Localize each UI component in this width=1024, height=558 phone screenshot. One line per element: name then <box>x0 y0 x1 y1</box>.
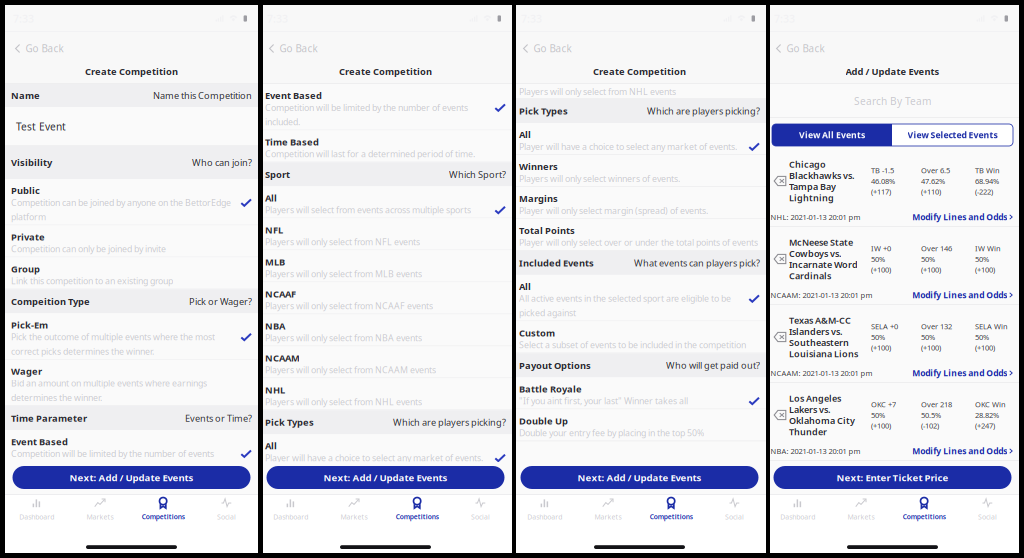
staticText: Sport <box>265 168 290 181</box>
button[interactable]: Next: Add / Update Events <box>266 466 504 489</box>
button[interactable]: Markets <box>829 497 892 523</box>
staticText: Double your entry fee by placing in the … <box>519 427 704 439</box>
button[interactable]: Social <box>703 497 766 523</box>
button[interactable]: Dashboard <box>259 497 322 523</box>
button[interactable]: NBA <box>259 314 512 346</box>
staticText: 50% <box>975 332 989 342</box>
button[interactable]: Modify Lines and Odds <box>912 445 1013 457</box>
staticText: Bid an amount on multiple events where e… <box>11 377 207 404</box>
button[interactable]: Markets <box>576 497 639 523</box>
button[interactable]: Wager <box>5 360 258 406</box>
button[interactable]: Markets <box>322 497 385 523</box>
button[interactable]: Go Back <box>766 32 1019 59</box>
button[interactable]: Dashboard <box>766 497 829 523</box>
staticText: Event Based <box>265 89 322 102</box>
staticText: (+100) <box>871 420 891 431</box>
button[interactable]: Competitions <box>639 497 703 523</box>
button[interactable]: Remove event <box>773 176 786 186</box>
staticText: SELA Win <box>975 321 1008 331</box>
staticText: Go Back <box>280 42 318 55</box>
staticText: 50% <box>921 332 935 342</box>
button[interactable]: Next: Enter Ticket Price <box>773 466 1011 489</box>
staticText: Pick or Wager? <box>189 295 252 308</box>
button[interactable]: Modify Lines and Odds <box>912 211 1013 223</box>
button[interactable]: Double Up <box>513 409 766 441</box>
button[interactable]: Pick-Em <box>5 313 258 360</box>
button[interactable]: Private <box>5 225 258 257</box>
button[interactable]: Social <box>956 497 1019 523</box>
staticText: Custom <box>519 326 555 339</box>
button[interactable]: MLB <box>259 250 512 282</box>
staticText: (+110) <box>921 186 941 197</box>
staticText: Private <box>11 230 45 243</box>
button[interactable]: Competitions <box>892 497 956 523</box>
staticText: Competitions <box>650 512 693 521</box>
button[interactable]: Margins <box>513 187 766 219</box>
button[interactable]: All <box>259 186 512 218</box>
button[interactable]: Event Based <box>5 430 258 476</box>
staticText: Players will only select from NHL events <box>519 85 676 97</box>
button[interactable]: Event Based <box>259 84 512 130</box>
staticText: Which are players picking? <box>393 416 506 428</box>
button[interactable]: Modify Lines and Odds <box>912 289 1013 301</box>
button[interactable]: Group <box>5 257 258 289</box>
button[interactable]: Modify Lines and Odds <box>912 367 1013 379</box>
button[interactable]: Remove event <box>773 254 786 264</box>
button[interactable]: All <box>513 123 766 155</box>
staticText: NCAAF <box>265 287 296 300</box>
button[interactable]: Next: Add / Update Events <box>12 466 250 489</box>
button[interactable]: Markets <box>68 497 131 523</box>
button[interactable]: Dashboard <box>513 497 576 523</box>
button[interactable]: View All Events <box>772 124 892 146</box>
button[interactable]: Dashboard <box>5 497 68 523</box>
staticText: All <box>519 128 531 141</box>
staticText: (+100) <box>975 342 995 353</box>
button[interactable]: Battle Royale <box>513 377 766 409</box>
button[interactable]: Remove event <box>773 332 786 342</box>
staticText: Payout Options <box>519 359 591 372</box>
staticText: Public <box>11 184 40 197</box>
staticText: View All Events <box>799 129 865 141</box>
staticText: 50% <box>871 254 885 264</box>
staticText: Select a subset of events to be included… <box>519 339 746 351</box>
staticText: All active events in the selected sport … <box>519 292 731 319</box>
button[interactable]: Social <box>449 497 512 523</box>
button[interactable]: NHL <box>259 378 512 410</box>
button[interactable]: NCAAF <box>259 282 512 314</box>
button[interactable]: Next: Add / Update Events <box>520 466 758 489</box>
staticText: Go Back <box>534 42 572 55</box>
button[interactable]: Go Back <box>259 32 512 59</box>
staticText: Dashboard <box>19 512 54 522</box>
button[interactable]: View Selected Events <box>892 124 1013 146</box>
button[interactable]: All <box>259 434 512 466</box>
button[interactable]: Time Based <box>259 130 512 162</box>
button[interactable]: Go Back <box>513 32 766 59</box>
button[interactable]: NCAAM <box>259 346 512 378</box>
staticText: 50% <box>871 410 885 420</box>
button[interactable]: Competitions <box>385 497 449 523</box>
staticText: (+247) <box>975 420 995 431</box>
staticText: Modify Lines and Odds <box>912 367 1007 379</box>
staticText: Who can join? <box>192 156 252 169</box>
staticText: 50.5% <box>921 410 941 420</box>
staticText: Modify Lines and Odds <box>912 211 1007 223</box>
button[interactable]: Remove event <box>773 410 786 420</box>
staticText: Total Points <box>519 224 575 237</box>
staticText: Competitions <box>903 512 946 521</box>
staticText: Competition can only be joined by invite <box>11 243 166 255</box>
button[interactable]: Public <box>5 179 258 225</box>
button[interactable]: Total Points <box>513 219 766 251</box>
staticText: Over 146 <box>921 243 952 253</box>
button[interactable]: NFL <box>259 218 512 250</box>
staticText: Players will only select from NCAAF even… <box>265 300 433 312</box>
button[interactable]: All <box>513 275 766 321</box>
staticText: Social <box>978 512 997 522</box>
button[interactable]: Social <box>195 497 258 523</box>
button[interactable]: Winners <box>513 155 766 187</box>
button[interactable]: Custom <box>513 321 766 353</box>
button[interactable]: Competitions <box>131 497 195 523</box>
staticText: (-222) <box>975 186 993 197</box>
staticText: 68.94% <box>975 176 999 186</box>
staticText: Next: Add / Update Events <box>69 471 193 484</box>
button[interactable]: Go Back <box>5 32 258 59</box>
